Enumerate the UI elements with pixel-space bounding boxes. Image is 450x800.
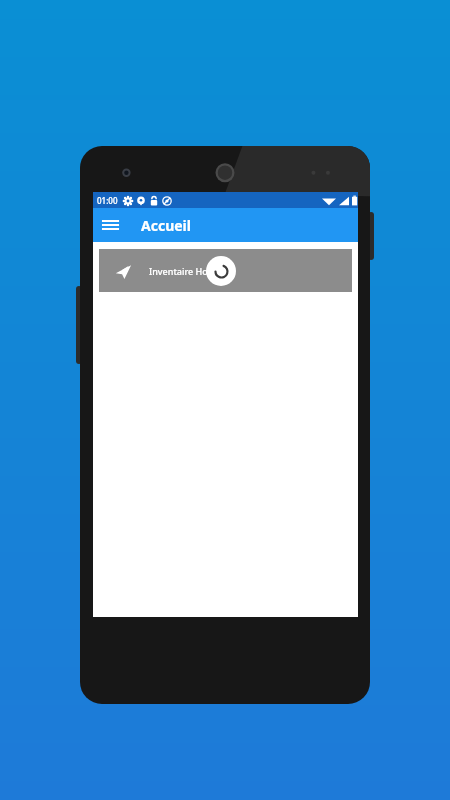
staticText: Accueil [141, 216, 191, 235]
staticText: 01:00 [97, 195, 118, 206]
other: Loading [206, 256, 236, 286]
button[interactable]: Open navigation drawer [93, 208, 127, 242]
button[interactable]: Inventaire Hors [99, 249, 352, 292]
staticText: Inventaire Hors [149, 265, 216, 277]
